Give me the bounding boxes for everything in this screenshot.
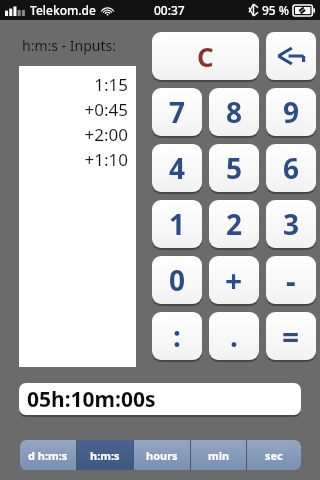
staticText: 00:37 [154, 2, 185, 18]
button[interactable]: . [209, 312, 259, 360]
button[interactable]: 4 [152, 144, 202, 192]
staticText: d h:m:s [28, 448, 68, 463]
staticText: +2:00 [84, 123, 128, 146]
button[interactable]: d h:m:s [20, 440, 76, 470]
staticText: 4 [169, 149, 186, 187]
staticText: - [286, 260, 296, 301]
staticText: 5 [226, 149, 243, 187]
button[interactable]: 3 [266, 200, 316, 248]
button[interactable]: - [266, 256, 316, 304]
button[interactable]: 1 [152, 200, 202, 248]
staticText: h:m:s - Inputs: [22, 36, 116, 55]
staticText: +0:45 [84, 98, 128, 121]
staticText: h:m:s [90, 448, 120, 463]
button[interactable]: 8 [209, 88, 259, 136]
button[interactable]: + [209, 256, 259, 304]
button[interactable]: 9 [266, 88, 316, 136]
button[interactable]: 05h:10m:00s [19, 383, 301, 415]
button[interactable]: min [191, 440, 246, 470]
staticText: 8 [226, 93, 243, 131]
staticText: + [225, 260, 243, 301]
button[interactable]: 1:15 [19, 66, 136, 367]
staticText: 95 % [262, 2, 290, 18]
staticText: 7 [169, 93, 186, 131]
staticText: 6 [283, 149, 300, 187]
button[interactable]: 2 [209, 200, 259, 248]
button[interactable]: C [152, 32, 259, 80]
staticText: 0 [169, 261, 186, 299]
staticText: min [208, 448, 230, 463]
button[interactable]: : [152, 312, 202, 360]
button[interactable]: 7 [152, 88, 202, 136]
button[interactable]: 6 [266, 144, 316, 192]
button[interactable]: 0 [152, 256, 202, 304]
staticText: C [197, 39, 214, 74]
staticText: 1 [169, 205, 186, 243]
button[interactable]: hours [134, 440, 190, 470]
button[interactable]: h:m:s [77, 440, 133, 470]
staticText: +1:10 [84, 148, 128, 171]
staticText: sec [265, 448, 283, 463]
button[interactable]: 5 [209, 144, 259, 192]
staticText: = [282, 316, 300, 357]
staticText: 2 [226, 205, 243, 243]
staticText: 1:15 [94, 73, 128, 96]
staticText: 05h:10m:00s [27, 385, 156, 414]
button[interactable]: sec [247, 440, 301, 470]
staticText: . [230, 317, 238, 355]
staticText: : [173, 317, 181, 355]
staticText: hours [146, 448, 178, 463]
staticText: 3 [283, 205, 300, 243]
button[interactable]: = [266, 312, 316, 360]
staticText: Telekom.de [30, 2, 96, 18]
button[interactable]: Backspace [266, 32, 316, 80]
staticText: 9 [283, 93, 300, 131]
